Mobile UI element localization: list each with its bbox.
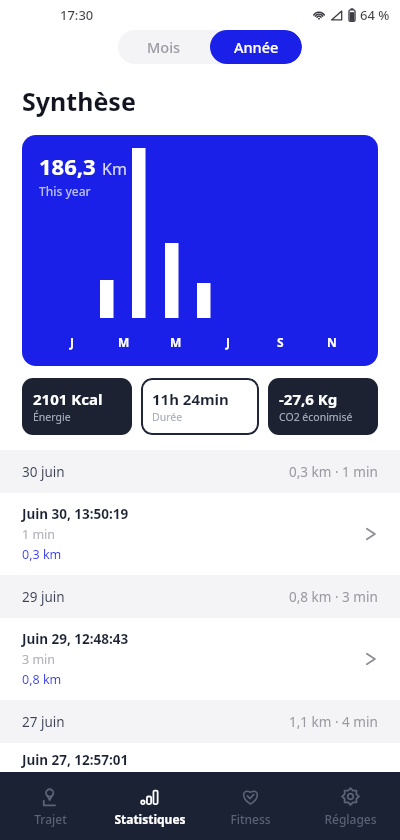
button[interactable]: Mois <box>118 30 210 64</box>
staticText: Juin 29, 12:48:43 <box>22 630 129 648</box>
staticText: N <box>327 334 337 350</box>
button[interactable]: Trajet <box>0 772 100 840</box>
staticText: 64 % <box>360 6 390 24</box>
staticText: Année <box>234 37 279 57</box>
staticText: M <box>118 334 130 350</box>
staticText: Réglages <box>324 811 377 827</box>
staticText: 29 juin <box>22 588 65 606</box>
staticText: 27 juin <box>22 713 65 731</box>
button[interactable]: Année <box>210 30 302 64</box>
staticText: S <box>277 334 284 350</box>
button[interactable]: Fitness <box>200 772 300 840</box>
button[interactable]: Réglages <box>300 772 400 840</box>
staticText: 3 min <box>22 651 56 668</box>
button[interactable]: 29 juin <box>0 575 400 618</box>
staticText: 2101 Kcal <box>33 389 103 409</box>
staticText: 1,1 km · 4 min <box>289 713 378 731</box>
staticText: 0,3 km · 1 min <box>289 463 378 481</box>
button[interactable]: 2101 Kcal <box>22 378 132 435</box>
button[interactable]: Juin 30, 13:50:19 <box>0 493 400 575</box>
staticText: J <box>70 334 74 350</box>
staticText: CO2 éconimisé <box>279 410 353 424</box>
staticText: Énergie <box>33 410 71 424</box>
staticText: Trajet <box>34 811 67 827</box>
button[interactable]: Juin 27, 12:57:01 <box>0 743 400 771</box>
staticText: Juin 27, 12:57:01 <box>22 751 129 769</box>
staticText: Km <box>102 158 127 180</box>
staticText: 30 juin <box>22 463 65 481</box>
staticText: 1 min <box>22 526 56 543</box>
button[interactable]: 11h 24min <box>141 378 259 435</box>
staticText: Fitness <box>230 811 271 827</box>
button[interactable]: 27 juin <box>0 700 400 743</box>
staticText: 0,3 km <box>22 546 62 563</box>
staticText: Mois <box>147 37 181 57</box>
button[interactable]: 186,3 <box>22 135 378 366</box>
staticText: M <box>170 334 182 350</box>
button[interactable]: Statistiques <box>100 772 200 840</box>
staticText: 186,3 <box>39 151 96 181</box>
button[interactable]: -27,6 Kg <box>268 378 378 435</box>
staticText: 0,8 km <box>22 671 62 688</box>
staticText: This year <box>39 183 91 199</box>
staticText: Statistiques <box>114 811 186 827</box>
staticText: Durée <box>152 410 183 424</box>
staticText: J <box>226 334 230 350</box>
button[interactable]: Juin 29, 12:48:43 <box>0 618 400 700</box>
staticText: 0,8 km · 3 min <box>289 588 378 606</box>
staticText: 17:30 <box>60 6 94 24</box>
staticText: Synthèse <box>22 84 136 118</box>
staticText: Juin 30, 13:50:19 <box>22 505 129 523</box>
staticText: 11h 24min <box>152 389 229 409</box>
staticText: -27,6 Kg <box>279 389 338 409</box>
button[interactable]: 30 juin <box>0 450 400 493</box>
